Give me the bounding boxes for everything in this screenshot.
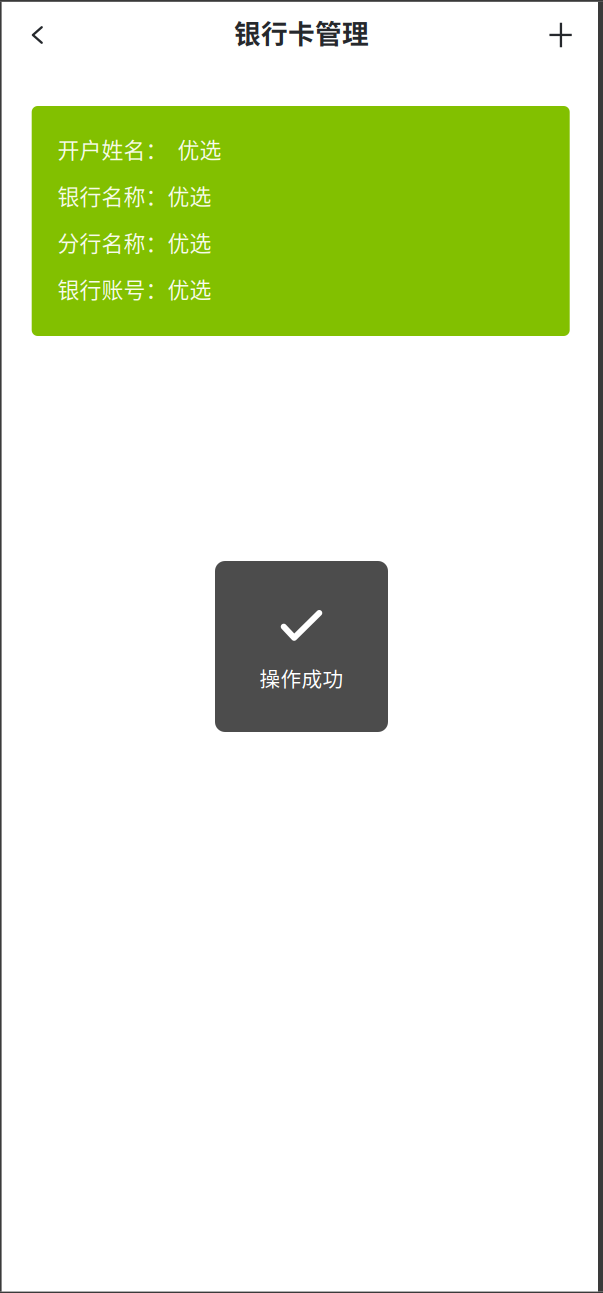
- staticText: 操作成功: [259, 663, 343, 693]
- button[interactable]: 添加银行卡: [539, 10, 583, 60]
- button[interactable]: 返回: [15, 10, 59, 60]
- staticText: 银行账号：优选: [57, 273, 211, 304]
- staticText: 开户姓名： 优选: [57, 133, 221, 165]
- staticText: 银行卡管理: [234, 13, 369, 51]
- staticText: 分行名称：优选: [57, 226, 211, 258]
- staticText: 银行名称：优选: [57, 179, 211, 211]
